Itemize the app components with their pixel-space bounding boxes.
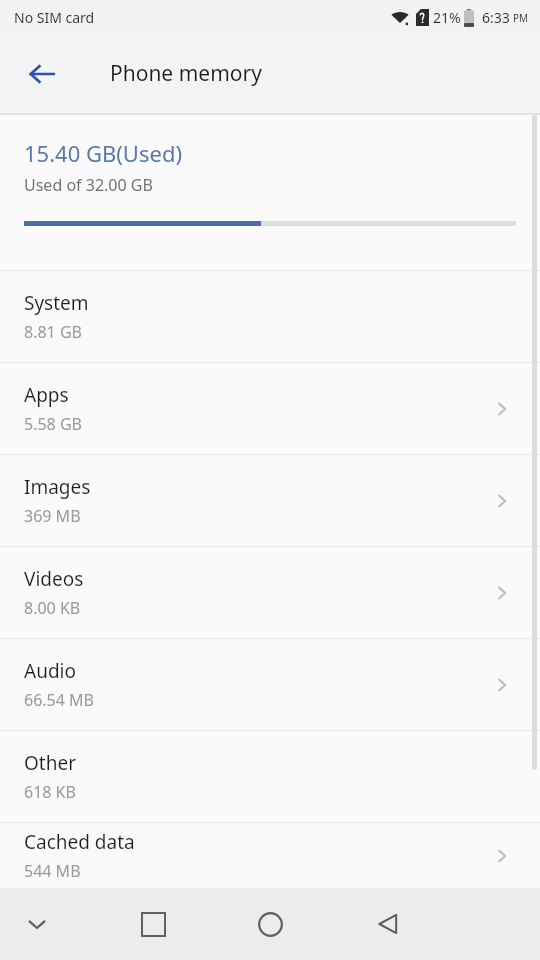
button[interactable]: Apps [0, 363, 540, 454]
staticText: Videos [24, 566, 84, 592]
staticText: Phone memory [110, 59, 262, 88]
button[interactable]: Cached data [0, 823, 540, 888]
staticText: 21% [433, 8, 461, 27]
staticText: 544 MB [24, 860, 81, 882]
staticText: 369 MB [24, 505, 81, 527]
button[interactable]: Recent apps [127, 898, 179, 950]
staticText: 15.40 GB(Used) [24, 138, 183, 168]
staticText: Other [24, 750, 77, 776]
staticText: Apps [24, 382, 69, 408]
staticText: Images [24, 474, 91, 500]
button[interactable]: Back [14, 46, 70, 102]
staticText: Used of 32.00 GB [24, 174, 153, 196]
staticText: System [24, 290, 89, 316]
button[interactable]: Home [244, 898, 296, 950]
staticText: 6:33 [482, 8, 510, 27]
button[interactable]: Audio [0, 639, 540, 730]
staticText: Cached data [24, 829, 135, 855]
staticText: PM [513, 11, 529, 25]
staticText: 5.58 GB [24, 413, 82, 435]
button[interactable]: Images [0, 455, 540, 546]
button[interactable]: System [0, 271, 540, 362]
button[interactable]: Other [0, 731, 540, 822]
button[interactable]: Back [362, 898, 414, 950]
button[interactable]: Videos [0, 547, 540, 638]
staticText: Audio [24, 658, 76, 684]
staticText: No SIM card [14, 8, 95, 27]
staticText: 8.00 KB [24, 597, 81, 619]
button[interactable]: Hide keyboard [11, 898, 63, 950]
staticText: 66.54 MB [24, 689, 94, 711]
staticText: 8.81 GB [24, 321, 82, 343]
staticText: 618 KB [24, 781, 76, 803]
